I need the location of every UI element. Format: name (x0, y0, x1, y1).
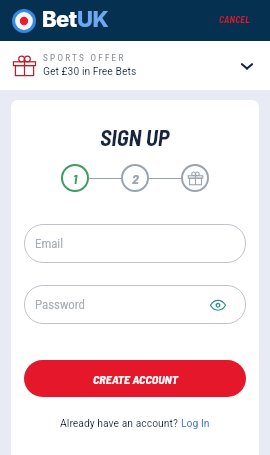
staticText: Get £30 in Free Bets (43, 65, 137, 78)
staticText: CREATE ACCOUNT (93, 372, 178, 386)
staticText: Already have an account? (60, 417, 181, 430)
button[interactable]: Show password (210, 297, 226, 313)
staticText: SPORTS OFFER (43, 53, 126, 63)
staticText: 1 (73, 170, 78, 187)
staticText: Log In (181, 417, 210, 430)
button[interactable] (181, 164, 209, 192)
staticText: SIGN UP (100, 123, 170, 150)
staticText: CANCEL (219, 13, 251, 24)
button[interactable]: Password (24, 285, 246, 324)
staticText: UK (77, 6, 109, 33)
button[interactable]: 2 (121, 164, 149, 192)
button[interactable]: 1 (61, 164, 89, 192)
staticText: Password (35, 298, 85, 312)
button[interactable]: Bet (12, 7, 109, 34)
button[interactable]: SPORTS OFFER (0, 41, 270, 90)
button[interactable]: CANCEL (205, 7, 270, 34)
button[interactable]: Log In (181, 417, 210, 430)
staticText: 2 (132, 170, 139, 187)
staticText: Bet (42, 6, 77, 33)
other: Expand offer (238, 57, 256, 75)
staticText: Email (35, 237, 64, 251)
button[interactable]: CREATE ACCOUNT (24, 360, 246, 397)
button[interactable]: Email (24, 224, 246, 263)
